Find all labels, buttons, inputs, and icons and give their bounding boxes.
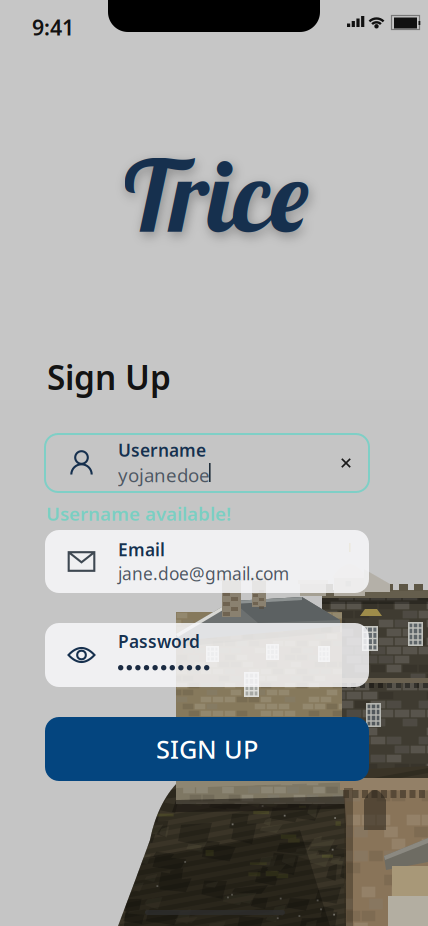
staticText: 9:41 xyxy=(32,13,74,41)
staticText: SIGN UP xyxy=(156,732,258,766)
staticText: Trice xyxy=(118,133,309,256)
button[interactable]: Email xyxy=(45,530,369,593)
staticText: Sign Up xyxy=(47,355,171,399)
button[interactable]: Username xyxy=(45,434,369,492)
staticText: Password xyxy=(118,630,200,653)
staticText: Username xyxy=(118,439,206,462)
staticText: Username available! xyxy=(46,501,231,526)
button[interactable]: Password xyxy=(45,623,369,687)
staticText: jane.doe@gmail.com xyxy=(118,562,289,585)
staticText: Email xyxy=(118,538,165,561)
button[interactable]: Clear username xyxy=(329,446,363,480)
staticText: yojanedoe xyxy=(118,463,210,487)
button[interactable]: SIGN UP xyxy=(45,717,369,781)
